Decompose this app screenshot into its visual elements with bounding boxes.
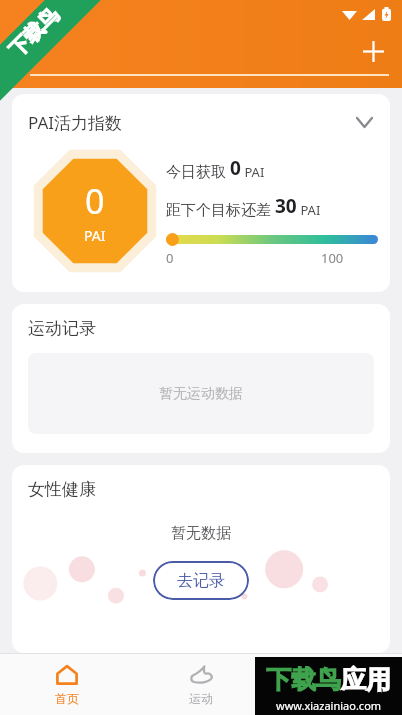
staticText: PAI — [241, 163, 265, 181]
staticText: 运动 — [189, 691, 213, 706]
staticText: PAI活力指数 — [28, 111, 350, 134]
staticText: 暂无数据 — [28, 524, 374, 543]
staticText: 距下个目标还差 — [166, 199, 275, 219]
staticText: PAI — [84, 226, 106, 245]
staticText: 0 — [230, 155, 241, 181]
staticText: 下载鸟 — [4, 2, 64, 62]
button[interactable]: Add — [353, 31, 393, 71]
button[interactable]: 女性健康 — [12, 465, 390, 653]
staticText: 0 — [166, 249, 174, 267]
button[interactable]: 去记录 — [153, 561, 249, 600]
staticText: 下载鸟 — [266, 664, 341, 695]
staticText: 100 — [321, 249, 344, 267]
staticText: PAI — [297, 201, 321, 219]
staticText: 女性健康 — [28, 479, 96, 500]
button[interactable]: PAI活力指数 — [12, 94, 390, 292]
staticText: 首页 — [55, 691, 79, 706]
staticText: 今日获取 — [166, 161, 230, 181]
button[interactable]: 运动记录 — [12, 304, 390, 453]
staticText: www.xiazainiao.com — [276, 698, 382, 713]
button[interactable] — [268, 654, 402, 715]
staticText: 应用 — [341, 664, 391, 695]
staticText: 30 — [275, 193, 297, 219]
button[interactable]: Collapse — [350, 108, 378, 136]
staticText: 0 — [85, 178, 105, 224]
staticText: 去记录 — [177, 571, 225, 591]
staticText: 运动记录 — [28, 318, 96, 339]
button[interactable]: 运动 — [134, 654, 268, 715]
staticText: 暂无运动数据 — [159, 385, 243, 403]
button[interactable]: 首页 — [0, 654, 134, 715]
